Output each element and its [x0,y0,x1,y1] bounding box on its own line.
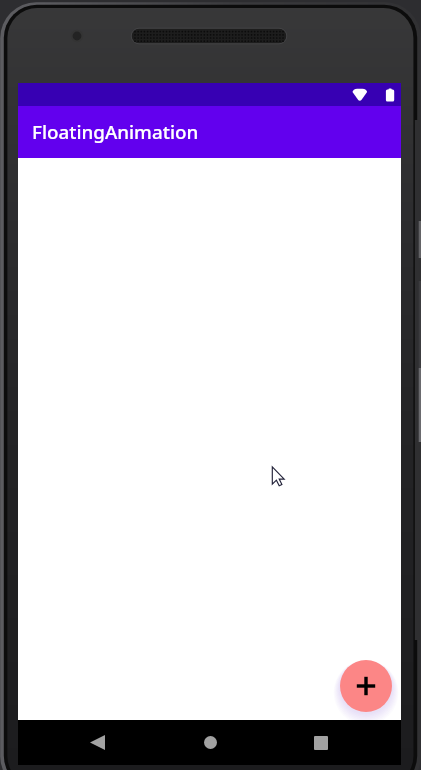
button[interactable]: Home [186,720,234,765]
button[interactable]: Recent apps [297,720,345,765]
staticText: FloatingAnimation [32,119,199,145]
button[interactable]: Back [73,720,121,765]
button[interactable]: Add [340,660,392,712]
